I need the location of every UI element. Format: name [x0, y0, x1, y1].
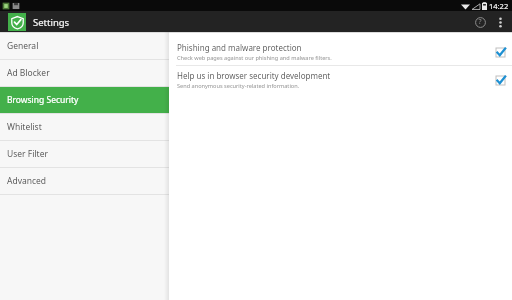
button[interactable]: Help us in browser security development [169, 66, 512, 93]
staticText: User Filter [7, 148, 48, 160]
button[interactable]: Toggle setting [492, 44, 508, 60]
staticText: Send anonymous security-related informat… [177, 82, 300, 90]
staticText: Whitelist [7, 121, 42, 133]
staticText: Ad Blocker [7, 67, 50, 79]
button[interactable]: Advanced [0, 168, 169, 194]
staticText: Help us in browser security development [177, 70, 331, 81]
button[interactable]: More options [492, 12, 508, 32]
button[interactable]: Phishing and malware protection [169, 38, 512, 65]
staticText: ? [478, 17, 482, 27]
staticText: Settings [33, 16, 70, 29]
staticText: General [7, 40, 39, 52]
staticText: Check web pages against our phishing and… [177, 54, 332, 62]
staticText: Advanced [7, 175, 47, 187]
button[interactable]: Toggle setting [492, 72, 508, 88]
button[interactable]: General [0, 33, 169, 59]
staticText: 14:22 [489, 1, 509, 11]
button[interactable]: User Filter [0, 141, 169, 167]
staticText: Phishing and malware protection [177, 42, 302, 53]
button[interactable]: Help [470, 12, 490, 32]
staticText: Browsing Security [7, 94, 79, 106]
button[interactable]: Browsing Security [0, 87, 169, 113]
button[interactable]: Whitelist [0, 114, 169, 140]
button[interactable]: Ad Blocker [0, 60, 169, 86]
